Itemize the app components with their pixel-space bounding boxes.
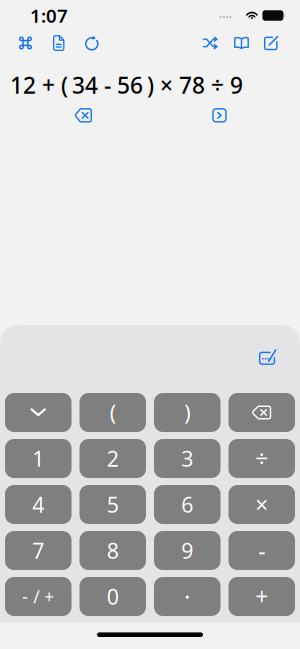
staticText: )	[184, 398, 190, 427]
staticText: 2	[107, 444, 119, 473]
button[interactable]	[195, 37, 226, 49]
button[interactable]: 9	[154, 531, 220, 570]
button[interactable]: 3	[154, 439, 220, 478]
button[interactable]	[76, 35, 108, 51]
staticText: •	[185, 588, 190, 605]
button[interactable]: •	[154, 577, 220, 616]
button[interactable]	[42, 35, 76, 51]
button[interactable]	[226, 36, 257, 49]
staticText: 5	[107, 490, 119, 519]
button[interactable]: 8	[79, 531, 146, 570]
button[interactable]: +	[228, 577, 295, 616]
button[interactable]: 5	[79, 485, 146, 524]
button[interactable]	[257, 35, 286, 50]
button[interactable]: 7	[5, 531, 71, 570]
button[interactable]: -	[228, 531, 295, 570]
button[interactable]	[259, 348, 277, 365]
button[interactable]: 6	[154, 485, 220, 524]
button[interactable]	[5, 393, 71, 432]
staticText: 9	[181, 536, 193, 565]
button[interactable]: ×	[228, 485, 295, 524]
button[interactable]	[75, 108, 92, 123]
button[interactable]: (	[79, 393, 146, 432]
staticText: 4	[32, 490, 44, 519]
staticText: 7	[32, 536, 44, 565]
button[interactable]: - / +	[5, 577, 71, 616]
button[interactable]: )	[154, 393, 220, 432]
staticText: -	[258, 535, 265, 565]
button[interactable]: ÷	[228, 439, 295, 478]
button[interactable]	[213, 109, 226, 122]
button[interactable]: 2	[79, 439, 146, 478]
button[interactable]	[228, 393, 295, 432]
button[interactable]: 4	[5, 485, 71, 524]
staticText: ×	[255, 489, 268, 519]
staticText: 3	[181, 444, 193, 473]
staticText: +	[255, 581, 268, 611]
staticText: 0	[107, 582, 119, 611]
button[interactable]: 1	[5, 439, 71, 478]
staticText: 6	[181, 490, 193, 519]
staticText: 1:07	[30, 3, 68, 28]
staticText: ÷	[255, 443, 268, 473]
staticText: 8	[107, 536, 119, 565]
staticText: (	[110, 398, 116, 427]
staticText: 1	[32, 444, 44, 473]
staticText: 12 + ( 34 - 56 ) × 78 ÷ 9	[10, 70, 243, 100]
button[interactable]: 0	[79, 577, 146, 616]
button[interactable]	[9, 35, 42, 50]
staticText: - / +	[22, 585, 54, 608]
